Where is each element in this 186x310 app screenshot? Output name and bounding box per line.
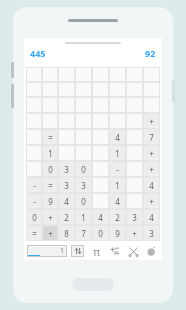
button[interactable] bbox=[92, 97, 109, 113]
button[interactable] bbox=[58, 129, 75, 145]
button[interactable] bbox=[42, 67, 58, 82]
button[interactable]: 0 bbox=[75, 193, 92, 209]
button[interactable] bbox=[26, 113, 42, 129]
button[interactable] bbox=[126, 193, 143, 209]
button[interactable] bbox=[92, 129, 109, 145]
button[interactable]: 4 bbox=[92, 209, 109, 225]
button[interactable] bbox=[92, 82, 109, 97]
button[interactable]: + bbox=[42, 209, 58, 225]
button[interactable]: = bbox=[42, 129, 58, 145]
button[interactable] bbox=[75, 145, 92, 161]
button[interactable] bbox=[42, 97, 58, 113]
button[interactable]: + bbox=[42, 225, 58, 241]
button[interactable]: 3 bbox=[58, 161, 75, 177]
button[interactable]: More bbox=[143, 243, 159, 259]
button[interactable]: = bbox=[42, 177, 58, 193]
button[interactable] bbox=[75, 97, 92, 113]
button[interactable]: - bbox=[109, 161, 126, 177]
button[interactable]: Shuffle bbox=[125, 243, 141, 259]
staticText: = bbox=[48, 132, 53, 143]
button[interactable] bbox=[92, 67, 109, 82]
button[interactable] bbox=[26, 145, 42, 161]
button[interactable] bbox=[126, 161, 143, 177]
button[interactable]: 3 bbox=[143, 225, 160, 241]
button[interactable] bbox=[26, 129, 42, 145]
button[interactable] bbox=[92, 177, 109, 193]
button[interactable] bbox=[75, 82, 92, 97]
button[interactable]: 0 bbox=[26, 209, 42, 225]
button[interactable]: 2 bbox=[109, 209, 126, 225]
button[interactable] bbox=[126, 129, 143, 145]
button[interactable] bbox=[58, 113, 75, 129]
button[interactable] bbox=[92, 193, 109, 209]
button[interactable]: 3 bbox=[126, 209, 143, 225]
button[interactable] bbox=[26, 82, 42, 97]
button[interactable]: 9 bbox=[42, 193, 58, 209]
button[interactable]: 9 bbox=[109, 225, 126, 241]
button[interactable]: Sort bbox=[71, 245, 84, 257]
button[interactable]: Add bbox=[107, 243, 123, 259]
button[interactable] bbox=[143, 97, 160, 113]
button[interactable]: Home bbox=[72, 278, 114, 291]
button[interactable] bbox=[126, 97, 143, 113]
button[interactable]: 1 bbox=[42, 145, 58, 161]
button[interactable]: + bbox=[143, 161, 160, 177]
button[interactable]: 3 bbox=[75, 177, 92, 193]
button[interactable] bbox=[109, 97, 126, 113]
button[interactable]: + bbox=[126, 225, 143, 241]
button[interactable] bbox=[58, 82, 75, 97]
button[interactable]: 4 bbox=[143, 209, 160, 225]
staticText: 4 bbox=[115, 196, 120, 207]
button[interactable]: 1 bbox=[109, 145, 126, 161]
button[interactable] bbox=[58, 67, 75, 82]
button[interactable] bbox=[42, 113, 58, 129]
button[interactable] bbox=[92, 161, 109, 177]
button[interactable] bbox=[26, 161, 42, 177]
button[interactable]: 1 bbox=[75, 209, 92, 225]
button[interactable]: + bbox=[143, 145, 160, 161]
button[interactable]: 3 bbox=[58, 177, 75, 193]
button[interactable] bbox=[26, 67, 42, 82]
button[interactable] bbox=[143, 67, 160, 82]
button[interactable]: = bbox=[26, 225, 42, 241]
button[interactable]: 0 bbox=[75, 161, 92, 177]
staticText: 2 bbox=[115, 212, 120, 223]
button[interactable]: 2 bbox=[58, 209, 75, 225]
button[interactable] bbox=[126, 145, 143, 161]
button[interactable]: 4 bbox=[143, 177, 160, 193]
button[interactable] bbox=[92, 145, 109, 161]
button[interactable] bbox=[75, 113, 92, 129]
button[interactable] bbox=[126, 67, 143, 82]
staticText: 3 bbox=[64, 164, 69, 175]
button[interactable] bbox=[26, 97, 42, 113]
button[interactable]: Level bbox=[27, 245, 67, 257]
button[interactable]: 7 bbox=[75, 225, 92, 241]
button[interactable] bbox=[92, 113, 109, 129]
button[interactable] bbox=[58, 145, 75, 161]
button[interactable]: 0 bbox=[42, 161, 58, 177]
button[interactable]: 0 bbox=[92, 225, 109, 241]
button[interactable] bbox=[75, 67, 92, 82]
button[interactable]: 4 bbox=[109, 193, 126, 209]
button[interactable]: - bbox=[26, 193, 42, 209]
button[interactable] bbox=[143, 82, 160, 97]
button[interactable] bbox=[58, 97, 75, 113]
button[interactable]: 8 bbox=[58, 225, 75, 241]
button[interactable] bbox=[126, 82, 143, 97]
button[interactable] bbox=[109, 67, 126, 82]
button[interactable] bbox=[75, 129, 92, 145]
button[interactable]: + bbox=[143, 113, 160, 129]
button[interactable]: + bbox=[143, 193, 160, 209]
button[interactable]: 4 bbox=[58, 193, 75, 209]
button[interactable] bbox=[126, 177, 143, 193]
button[interactable] bbox=[42, 82, 58, 97]
button[interactable]: - bbox=[26, 177, 42, 193]
button[interactable] bbox=[126, 113, 143, 129]
button[interactable]: 1 bbox=[109, 177, 126, 193]
button[interactable] bbox=[109, 113, 126, 129]
staticText: + bbox=[132, 228, 137, 239]
button[interactable]: 7 bbox=[143, 129, 160, 145]
button[interactable]: Pi bbox=[89, 243, 105, 259]
button[interactable] bbox=[109, 82, 126, 97]
button[interactable]: 4 bbox=[109, 129, 126, 145]
